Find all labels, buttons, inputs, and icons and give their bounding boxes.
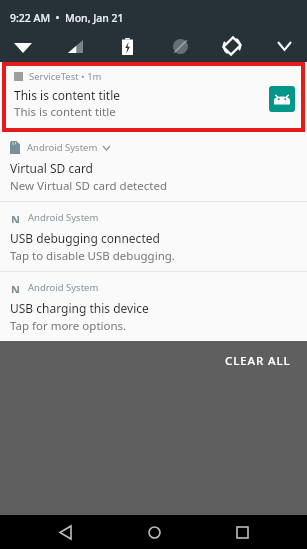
- button[interactable]: CLEAR ALL: [209, 345, 307, 377]
- staticText: ServiceTest • 1m: [29, 70, 102, 83]
- staticText: USB charging this device: [10, 300, 149, 316]
- button[interactable]: Mobile signal: [58, 32, 92, 60]
- button[interactable]: N: [0, 202, 307, 271]
- staticText: Android System: [28, 211, 99, 224]
- staticText: New Virtual SD card detected: [10, 178, 167, 194]
- button[interactable]: Expand quick settings: [267, 32, 301, 60]
- button[interactable]: N: [0, 272, 307, 341]
- staticText: Tap to disable USB debugging.: [10, 248, 175, 264]
- staticText: N: [11, 282, 20, 293]
- button[interactable]: Android System: [0, 132, 307, 201]
- staticText: This is content title: [14, 87, 121, 103]
- staticText: N: [11, 212, 20, 223]
- staticText: Virtual SD card: [10, 160, 94, 176]
- button[interactable]: ServiceTest • 1m: [6, 66, 301, 128]
- button[interactable]: Auto rotate: [215, 32, 249, 60]
- button[interactable]: Recent apps: [219, 515, 265, 549]
- button[interactable]: Battery charging: [110, 32, 144, 60]
- button[interactable]: Wi-Fi: [6, 32, 40, 60]
- staticText: CLEAR ALL: [225, 353, 291, 369]
- staticText: This is content title: [14, 104, 116, 120]
- button[interactable]: Home: [131, 515, 177, 549]
- button[interactable]: Do not disturb: [163, 32, 197, 60]
- staticText: 9:22 AM • Mon, Jan 21: [10, 11, 124, 25]
- staticText: Android System: [28, 281, 99, 294]
- staticText: Android System: [27, 141, 98, 154]
- button[interactable]: Back: [42, 515, 88, 549]
- staticText: USB debugging connected: [10, 230, 160, 246]
- staticText: Tap for more options.: [10, 318, 127, 334]
